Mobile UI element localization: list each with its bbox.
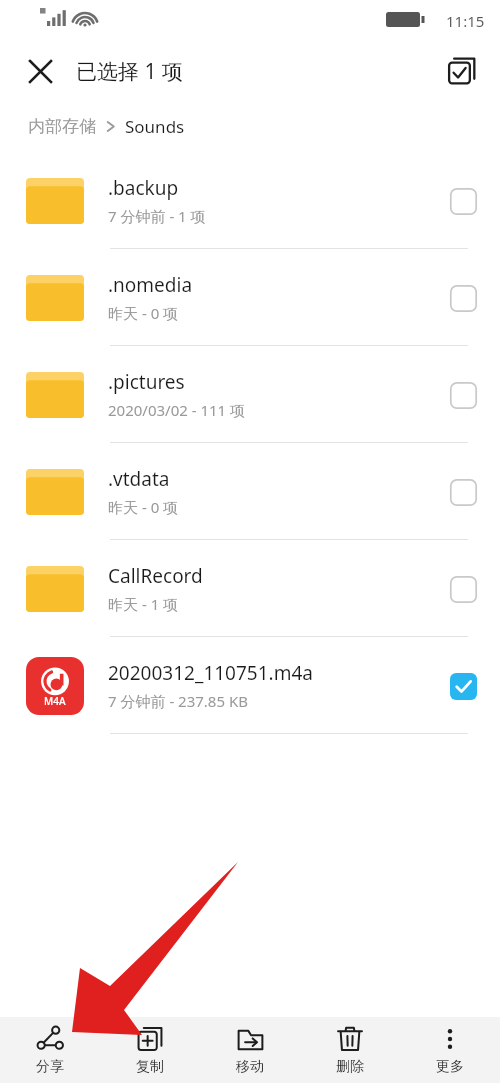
staticText: 移动 — [236, 1058, 264, 1076]
staticText: 删除 — [336, 1058, 364, 1076]
staticText: 复制 — [136, 1058, 164, 1076]
staticText: 昨天 - 1 项 — [108, 594, 179, 614]
staticText: .nomedia — [108, 272, 193, 298]
staticText: 昨天 - 0 项 — [108, 303, 179, 323]
button[interactable]: Select item — [448, 477, 478, 507]
staticText: CallRecord — [108, 563, 203, 589]
staticText: 2020/03/02 - 111 项 — [108, 400, 246, 420]
button[interactable]: CallRecord — [0, 540, 500, 637]
staticText: Sounds — [125, 115, 185, 138]
button[interactable]: Select all — [439, 48, 485, 94]
staticText: .vtdata — [108, 466, 170, 492]
staticText: .backup — [108, 175, 179, 201]
button[interactable]: Select item — [448, 671, 478, 701]
button[interactable]: Select item — [448, 186, 478, 216]
staticText: 7 分钟前 - 1 项 — [108, 206, 206, 226]
button[interactable]: 复制 — [100, 1017, 200, 1083]
button[interactable]: M4A — [0, 637, 500, 734]
staticText: 20200312_110751.m4a — [108, 660, 313, 686]
button[interactable]: .pictures — [0, 346, 500, 443]
button[interactable]: .nomedia — [0, 249, 500, 346]
button[interactable]: Select item — [448, 380, 478, 410]
staticText: 更多 — [436, 1058, 464, 1076]
button[interactable]: 删除 — [300, 1017, 400, 1083]
button[interactable]: 移动 — [200, 1017, 300, 1083]
staticText: 11:15 — [446, 11, 485, 31]
button[interactable]: .backup — [0, 152, 500, 249]
staticText: 昨天 - 0 项 — [108, 497, 179, 517]
staticText: 已选择 1 项 — [76, 57, 183, 86]
button[interactable]: Select item — [448, 283, 478, 313]
button[interactable]: 更多 — [400, 1017, 500, 1083]
staticText: M4A — [44, 694, 66, 708]
button[interactable]: .vtdata — [0, 443, 500, 540]
button[interactable]: 分享 — [0, 1017, 100, 1083]
staticText: 分享 — [36, 1058, 64, 1076]
staticText: 内部存储 — [28, 116, 96, 137]
staticText: .pictures — [108, 369, 185, 395]
button[interactable]: Close — [18, 49, 62, 93]
button[interactable]: Select item — [448, 574, 478, 604]
staticText: 7 分钟前 - 237.85 KB — [108, 691, 248, 711]
